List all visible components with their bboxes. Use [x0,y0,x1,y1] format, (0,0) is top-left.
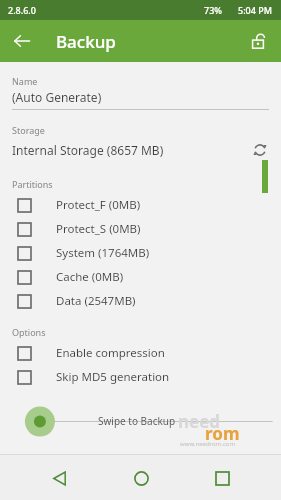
button[interactable]: Back [37,456,81,500]
button[interactable]: Cache (0MB) [0,265,281,289]
staticText: System (1764MB) [56,245,150,261]
button[interactable]: Skip MD5 generation [0,365,281,389]
button[interactable]: Swipe to Backup [0,398,281,454]
staticText: Cache (0MB) [56,269,124,285]
button[interactable]: (Auto Generate) [12,89,269,110]
staticText: Enable compression [56,345,165,361]
staticText: Skip MD5 generation [56,369,170,385]
staticText: Backup [56,30,116,53]
button[interactable]: Refresh storage [247,137,273,163]
staticText: Swipe to Backup [98,414,176,428]
staticText: Protect_S (0MB) [56,221,141,237]
staticText: www.needrom.com [180,440,236,448]
staticText: Storage [12,124,45,136]
button[interactable]: Protect_F (0MB) [0,193,281,217]
staticText: Data (2547MB) [56,293,136,309]
staticText: Partitions [12,178,53,190]
staticText: rom [205,422,240,445]
staticText: Internal Storage (8657 MB) [12,142,247,158]
staticText: Protect_F (0MB) [56,197,141,213]
button[interactable]: Internal Storage (8657 MB) [12,137,273,163]
button[interactable]: Home [119,456,163,500]
staticText: (Auto Generate) [12,89,102,105]
staticText: 2.8.6.0 [8,4,36,16]
staticText: need [178,410,221,433]
staticText: Options [12,326,46,338]
button[interactable]: System (1764MB) [0,241,281,265]
button[interactable]: Unlock [244,27,272,55]
button[interactable]: Protect_S (0MB) [0,217,281,241]
button[interactable]: Enable compression [0,341,281,365]
staticText: 5:04 PM [238,4,272,16]
button[interactable]: Recent apps [200,456,244,500]
button[interactable]: Data (2547MB) [0,289,281,313]
staticText: Name [12,75,38,87]
staticText: 73% [204,4,222,16]
button[interactable]: Back [8,27,36,55]
